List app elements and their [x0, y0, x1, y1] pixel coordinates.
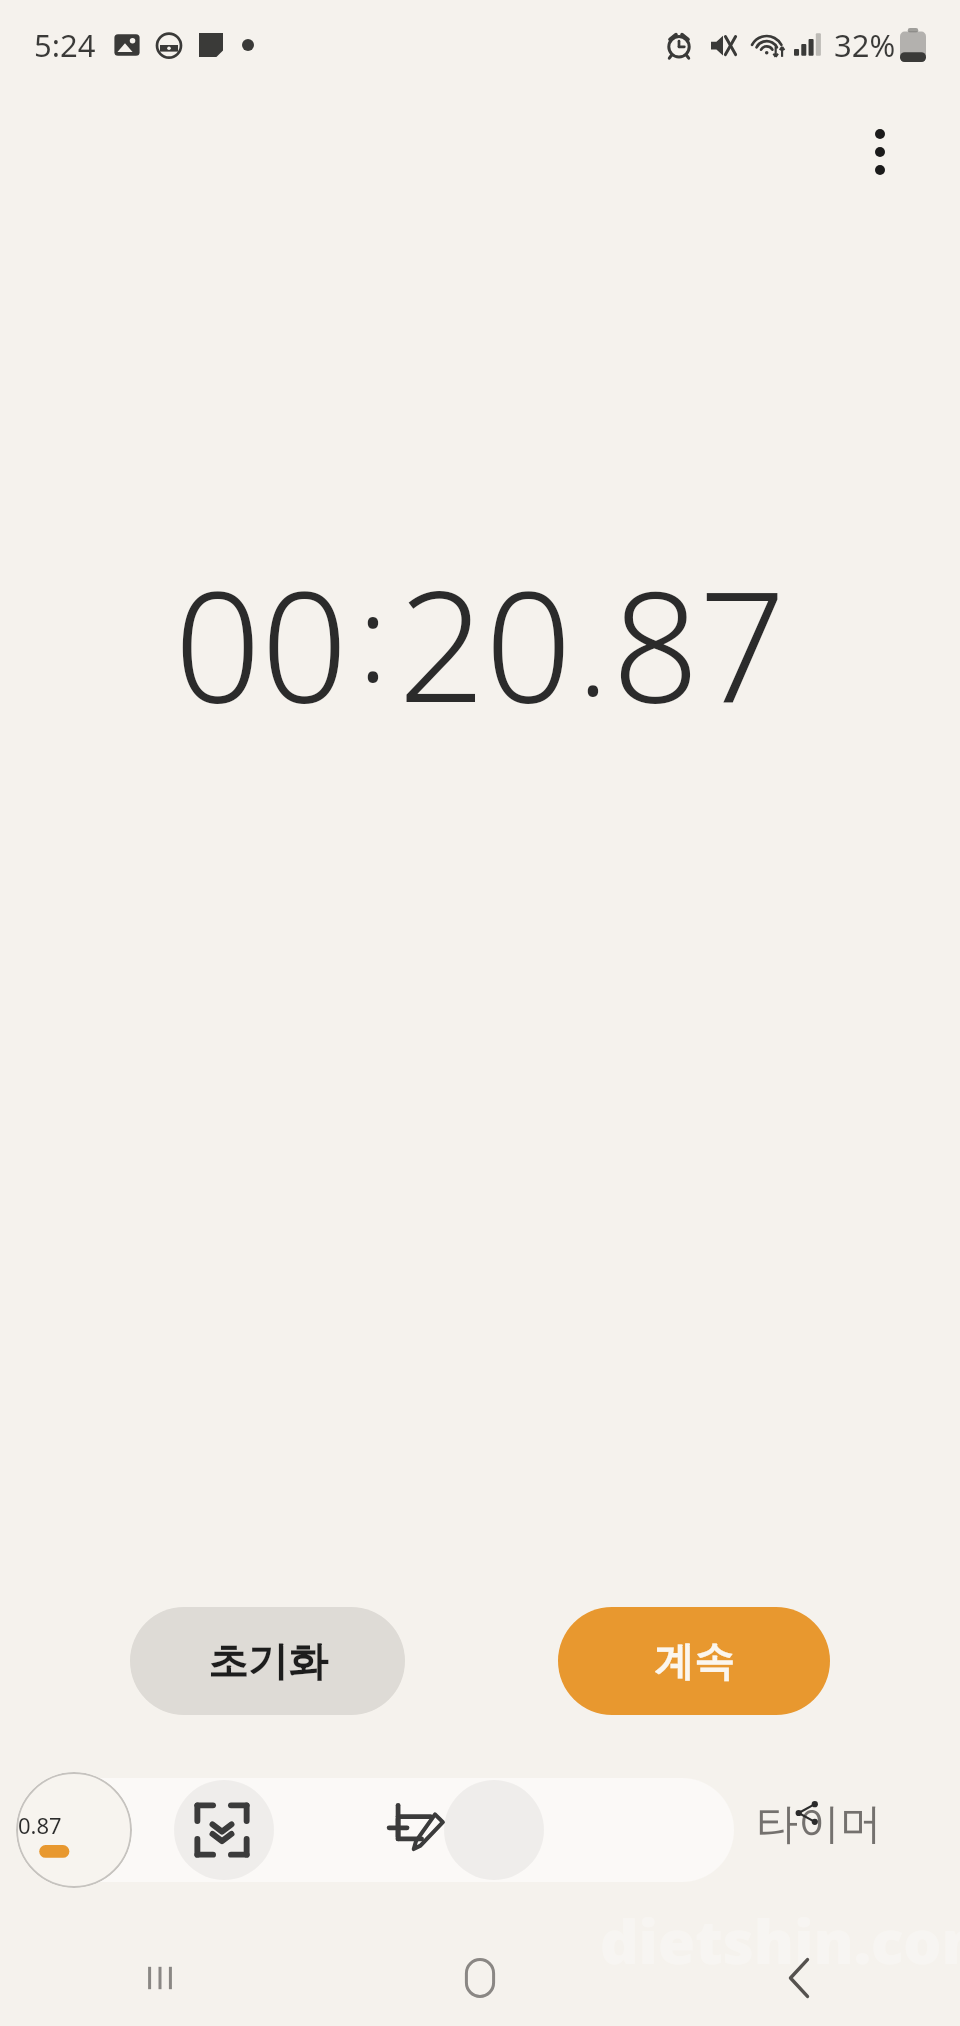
button[interactable]: More options — [836, 108, 924, 196]
staticText: : — [358, 554, 388, 717]
button[interactable]: Recent apps — [0, 1930, 320, 2026]
staticText: dietshin.com — [600, 1900, 960, 1982]
button[interactable]: 계속 — [558, 1607, 830, 1715]
button[interactable]: Back — [640, 1930, 960, 2026]
staticText: 20 — [398, 540, 572, 747]
staticText: 계속 — [654, 1636, 734, 1686]
staticText: 87 — [612, 540, 786, 747]
staticText: 00 — [174, 540, 348, 747]
button[interactable]: Share timer — [756, 1798, 882, 1851]
staticText: 5:24 — [34, 24, 96, 66]
button[interactable]: Screenshot preview — [16, 1772, 132, 1888]
button[interactable]: Home — [320, 1930, 640, 2026]
button[interactable]: 초기화 — [130, 1607, 405, 1715]
staticText: 초기화 — [208, 1636, 328, 1686]
staticText: 0.87 — [18, 1810, 62, 1840]
staticText: . — [578, 568, 608, 731]
button[interactable]: Scroll capture — [182, 1790, 262, 1870]
button[interactable]: Crop and draw — [376, 1790, 456, 1870]
staticText: 타이머 — [756, 1798, 882, 1851]
staticText: 32% — [834, 24, 896, 66]
